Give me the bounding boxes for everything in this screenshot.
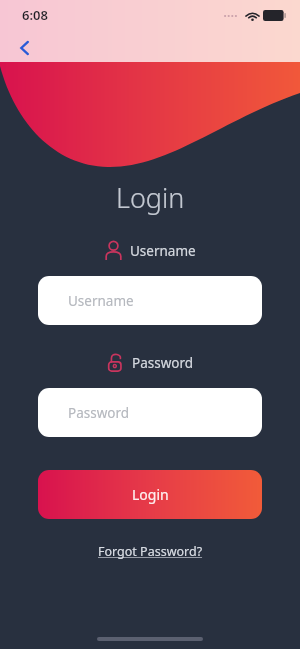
staticText: Login [116, 179, 185, 216]
button[interactable]: Forgot Password? [92, 539, 209, 564]
staticText: Username [68, 292, 134, 310]
button[interactable]: Login [38, 470, 262, 519]
staticText: 6:08 [22, 6, 48, 24]
button[interactable]: Back [8, 31, 42, 65]
staticText: Password [68, 404, 130, 422]
button[interactable]: Username [38, 276, 262, 325]
staticText: Password [132, 354, 194, 372]
staticText: Login [132, 485, 169, 504]
button[interactable]: Password [38, 388, 262, 437]
staticText: Forgot Password? [98, 543, 203, 560]
staticText: Username [130, 242, 196, 260]
